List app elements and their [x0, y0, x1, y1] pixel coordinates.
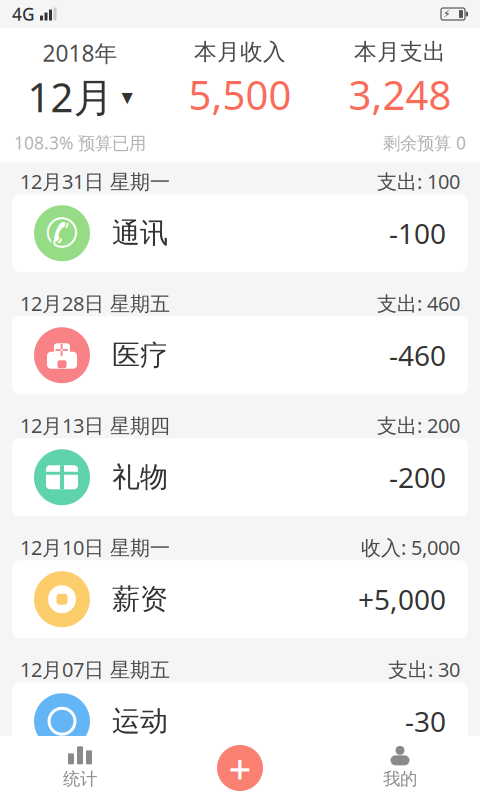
- button[interactable]: 我的: [320, 736, 480, 800]
- staticText: 收入: 5,000: [361, 534, 460, 561]
- staticText: 通讯: [112, 216, 168, 250]
- staticText: 运动: [112, 704, 168, 738]
- staticText: 支出: 200: [377, 412, 460, 439]
- staticText: +: [228, 741, 251, 794]
- staticText: ⚡︎: [443, 8, 450, 20]
- button[interactable]: 2018年: [0, 38, 160, 123]
- staticText: -200: [389, 459, 446, 496]
- staticText: -460: [389, 337, 446, 374]
- staticText: 3,248: [348, 68, 451, 121]
- staticText: 本月收入: [194, 38, 286, 66]
- button[interactable]: 运动: [12, 682, 468, 760]
- staticText: 5,500: [188, 68, 291, 121]
- staticText: +5,000: [358, 581, 446, 618]
- staticText: 4G: [12, 2, 35, 25]
- staticText: -100: [389, 215, 446, 252]
- staticText: 礼物: [112, 460, 168, 494]
- staticText: 支出: 100: [377, 168, 460, 195]
- staticText: 支出: 30: [388, 656, 460, 683]
- staticText: ✆: [45, 210, 79, 256]
- staticText: 医疗: [112, 338, 168, 372]
- staticText: 剩余预算 0: [383, 131, 466, 154]
- staticText: 本月支出: [354, 38, 446, 66]
- staticText: 12月13日 星期四: [20, 412, 170, 439]
- staticText: ✛: [54, 340, 69, 360]
- staticText: 12月31日 星期一: [20, 168, 170, 195]
- staticText: 薪资: [112, 582, 168, 616]
- staticText: 2018年: [42, 38, 117, 68]
- staticText: 支出: 460: [377, 290, 460, 317]
- staticText: ▾: [121, 84, 132, 109]
- staticText: -30: [405, 703, 446, 740]
- button[interactable]: 统计: [0, 736, 160, 800]
- button[interactable]: 添加: [160, 736, 320, 800]
- staticText: 12月28日 星期五: [20, 290, 170, 317]
- staticText: 12月: [27, 70, 113, 123]
- button[interactable]: 薪资: [12, 560, 468, 638]
- staticText: 108.3% 预算已用: [14, 131, 146, 154]
- button[interactable]: 礼物: [12, 438, 468, 516]
- staticText: 统计: [63, 768, 97, 790]
- staticText: 12月07日 星期五: [20, 656, 170, 683]
- staticText: 12月10日 星期一: [20, 534, 170, 561]
- button[interactable]: ✛: [12, 316, 468, 394]
- staticText: 我的: [383, 768, 417, 790]
- button[interactable]: ✆: [12, 194, 468, 272]
